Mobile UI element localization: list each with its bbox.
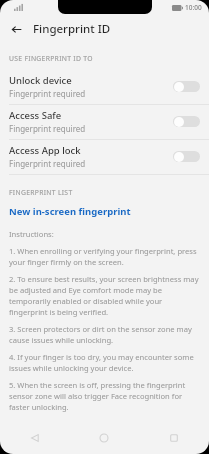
staticText: USE FINGERPRINT ID TO bbox=[9, 54, 93, 63]
button[interactable]: Access App lock bbox=[0, 140, 209, 174]
button[interactable]: Toggle bbox=[173, 151, 200, 162]
staticText: 2. To ensure best results, your screen b… bbox=[9, 274, 201, 317]
button[interactable]: Recents bbox=[139, 422, 209, 454]
button[interactable]: Toggle bbox=[173, 81, 200, 92]
button[interactable]: Unlock device bbox=[0, 70, 209, 104]
staticText: Unlock device bbox=[9, 74, 72, 87]
button[interactable]: Toggle bbox=[173, 116, 200, 127]
staticText: Access App lock bbox=[9, 144, 81, 157]
staticText: Fingerprint required bbox=[9, 158, 86, 169]
staticText: 4. If your finger is too dry, you may en… bbox=[9, 352, 201, 373]
staticText: FINGERPRINT LIST bbox=[9, 188, 73, 197]
button[interactable]: Back bbox=[8, 21, 24, 37]
button[interactable]: Access Safe bbox=[0, 105, 209, 139]
staticText: 5. When the screen is off, pressing the … bbox=[9, 380, 201, 412]
staticText: Fingerprint required bbox=[9, 88, 86, 99]
staticText: Instructions: bbox=[9, 229, 54, 239]
button[interactable]: Back bbox=[0, 422, 69, 454]
staticText: Access Safe bbox=[9, 109, 62, 122]
staticText: Fingerprint ID bbox=[33, 21, 111, 37]
staticText: 3. Screen protectors or dirt on the sens… bbox=[9, 324, 201, 345]
staticText: 10:00 bbox=[185, 3, 202, 12]
staticText: 1. When enrolling or verifying your fing… bbox=[9, 246, 201, 267]
staticText: Fingerprint required bbox=[9, 123, 86, 134]
staticText: New in-screen fingerprint bbox=[9, 205, 131, 218]
button[interactable]: New in-screen fingerprint bbox=[0, 204, 209, 227]
